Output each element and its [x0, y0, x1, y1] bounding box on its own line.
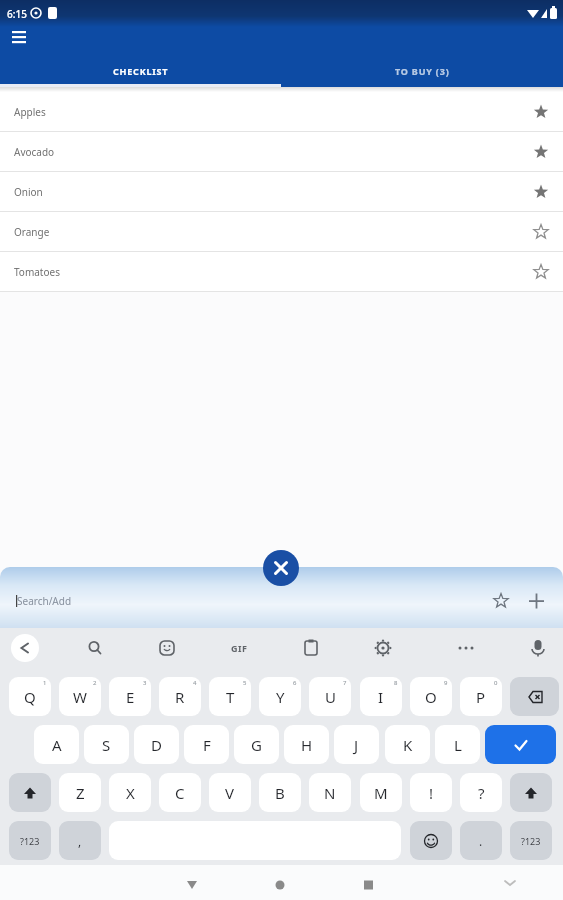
staticText: 8 — [394, 679, 398, 687]
button[interactable]: Z — [59, 773, 101, 812]
staticText: Apples — [14, 105, 46, 119]
staticText: Orange — [14, 225, 50, 239]
staticText: ?123 — [521, 835, 541, 847]
button[interactable]: I — [360, 677, 402, 716]
button[interactable] — [263, 550, 299, 586]
staticText: P — [476, 687, 486, 707]
button[interactable]: C — [159, 773, 201, 812]
staticText: B — [275, 783, 285, 803]
button[interactable]: S — [84, 725, 129, 764]
button[interactable]: Q — [9, 677, 51, 716]
staticText: 7 — [343, 679, 347, 687]
button[interactable]: W — [59, 677, 101, 716]
button[interactable]: V — [209, 773, 251, 812]
staticText: 6 — [293, 679, 297, 687]
button[interactable]: L — [435, 725, 480, 764]
staticText: F — [203, 735, 211, 755]
staticText: W — [73, 687, 87, 707]
staticText: N — [324, 783, 336, 803]
staticText: 5 — [243, 679, 247, 687]
button[interactable]: Tomatoes — [0, 252, 563, 291]
button[interactable]: M — [360, 773, 402, 812]
staticText: ? — [478, 783, 485, 803]
button[interactable]: , — [59, 821, 101, 860]
staticText: 1 — [43, 679, 47, 687]
staticText: , — [78, 833, 82, 849]
staticText: H — [301, 735, 313, 755]
button[interactable]: Orange — [0, 212, 563, 251]
button[interactable]: ?123 — [510, 821, 552, 860]
button[interactable]: Apples — [0, 92, 563, 131]
button[interactable]: . — [460, 821, 502, 860]
button[interactable]: ! — [410, 773, 452, 812]
button[interactable]: B — [259, 773, 301, 812]
staticText: O — [425, 687, 437, 707]
button[interactable] — [8, 27, 30, 49]
staticText: Onion — [14, 185, 43, 199]
button[interactable]: J — [334, 725, 379, 764]
button[interactable]: A — [34, 725, 79, 764]
button[interactable]: G — [234, 725, 279, 764]
button[interactable] — [510, 677, 559, 716]
staticText: 9 — [444, 679, 448, 687]
staticText: 0 — [494, 679, 498, 687]
button[interactable]: Y — [259, 677, 301, 716]
staticText: X — [126, 783, 135, 803]
staticText: GIF — [231, 642, 248, 654]
staticText: G — [251, 735, 262, 755]
button[interactable]: R — [159, 677, 201, 716]
staticText: J — [354, 735, 359, 755]
button[interactable]: U — [309, 677, 351, 716]
staticText: Z — [76, 783, 85, 803]
staticText: Avocado — [14, 145, 55, 159]
staticText: D — [151, 735, 162, 755]
staticText: A — [52, 735, 62, 755]
staticText: Q — [24, 687, 36, 707]
staticText: I — [378, 687, 384, 707]
staticText: TO BUY (3) — [395, 65, 450, 77]
button[interactable]: Onion — [0, 172, 563, 211]
staticText: E — [126, 687, 135, 707]
staticText: . — [479, 833, 483, 849]
button[interactable]: T — [209, 677, 251, 716]
staticText: K — [403, 735, 413, 755]
button[interactable]: P — [460, 677, 502, 716]
staticText: ! — [429, 783, 434, 803]
staticText: 6:15 — [7, 7, 27, 21]
button[interactable]: Avocado — [0, 132, 563, 171]
button[interactable]: F — [184, 725, 229, 764]
button[interactable]: O — [410, 677, 452, 716]
staticText: L — [454, 735, 462, 755]
staticText: Y — [276, 687, 285, 707]
button[interactable]: ?123 — [9, 821, 51, 860]
staticText: T — [226, 687, 235, 707]
button[interactable]: E — [109, 677, 151, 716]
button[interactable] — [9, 773, 51, 812]
staticText: 3 — [143, 679, 147, 687]
button[interactable]: K — [385, 725, 430, 764]
staticText: 4 — [193, 679, 197, 687]
staticText: S — [102, 735, 111, 755]
button[interactable]: D — [134, 725, 179, 764]
button[interactable]: CHECKLIST — [0, 54, 281, 87]
button[interactable] — [485, 725, 556, 764]
button[interactable]: N — [309, 773, 351, 812]
button[interactable]: H — [284, 725, 329, 764]
staticText: CHECKLIST — [113, 65, 169, 77]
staticText: Tomatoes — [14, 265, 60, 279]
button[interactable]: TO BUY (3) — [281, 54, 563, 87]
button[interactable] — [410, 821, 452, 860]
button[interactable]: X — [109, 773, 151, 812]
staticText: R — [175, 687, 185, 707]
staticText: Search/Add — [17, 594, 72, 608]
staticText: U — [325, 687, 336, 707]
button[interactable]: Search/Add — [0, 567, 563, 628]
staticText: M — [374, 783, 388, 803]
button[interactable]: ? — [460, 773, 502, 812]
staticText: ?123 — [20, 835, 40, 847]
button[interactable] — [510, 773, 552, 812]
staticText: 2 — [93, 679, 97, 687]
staticText: V — [225, 783, 235, 803]
staticText: C — [175, 783, 185, 803]
